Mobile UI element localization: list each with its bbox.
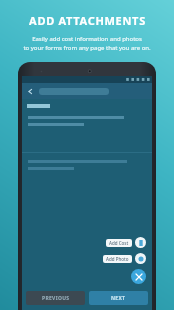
staticText: Add Cost xyxy=(109,240,129,246)
button[interactable]: NEXT xyxy=(89,291,148,305)
staticText: Easily add cost information and photos t… xyxy=(23,35,151,52)
button[interactable]: Back xyxy=(22,83,152,99)
button[interactable]: Close menu xyxy=(131,269,146,284)
button[interactable]: PREVIOUS xyxy=(26,291,85,305)
staticText: NEXT xyxy=(111,295,126,302)
staticText: ADD ATTACHMENTS xyxy=(29,13,146,28)
button[interactable]: Add Photo xyxy=(103,253,146,264)
button[interactable]: Back xyxy=(26,87,35,96)
staticText: PREVIOUS xyxy=(42,295,70,302)
button[interactable]: Add Cost xyxy=(106,237,146,248)
staticText: Add Photo xyxy=(106,256,129,262)
